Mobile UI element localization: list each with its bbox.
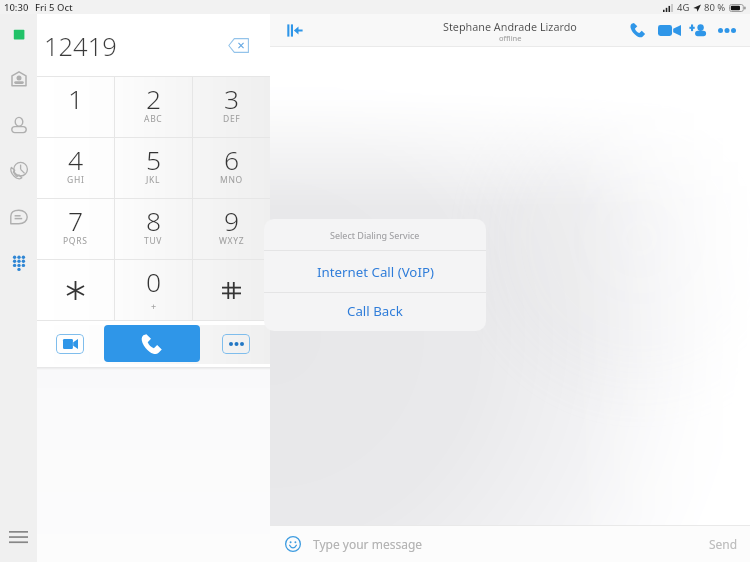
button[interactable]: Voice call — [626, 18, 650, 42]
button[interactable]: 6 — [193, 138, 270, 198]
staticText: 3 — [224, 81, 240, 117]
staticText: 80 % — [704, 1, 726, 14]
button[interactable]: 4 — [37, 138, 114, 198]
button[interactable]: Internet Call (VoIP) — [264, 251, 486, 292]
staticText: Call Back — [347, 302, 403, 320]
staticText: ABC — [144, 113, 163, 125]
staticText: JKL — [146, 174, 161, 186]
button[interactable]: Call Back — [264, 293, 486, 331]
staticText: 9 — [224, 203, 240, 239]
button[interactable]: Emoji — [282, 533, 304, 555]
button[interactable]: 1 — [37, 77, 114, 137]
button[interactable]: Keypad — [5, 248, 33, 276]
button[interactable]: 0 — [115, 260, 192, 320]
button[interactable]: More — [715, 18, 739, 42]
button[interactable]: 7 — [37, 199, 114, 259]
staticText: Internet Call (VoIP) — [317, 263, 434, 281]
button[interactable]: Recent calls — [5, 157, 33, 185]
button[interactable] — [193, 260, 270, 320]
staticText: GHI — [67, 174, 85, 186]
button[interactable]: 5 — [115, 138, 192, 198]
button[interactable]: Video call — [657, 18, 681, 42]
button[interactable]: Profile — [5, 21, 33, 49]
button[interactable]: Call — [104, 325, 200, 362]
staticText: PQRS — [63, 235, 88, 247]
button[interactable]: Contacts — [5, 111, 33, 139]
staticText: TUV — [144, 235, 163, 247]
button[interactable]: Add person — [686, 18, 710, 42]
button[interactable]: Collapse panel — [283, 19, 307, 41]
staticText: DEF — [223, 113, 241, 125]
staticText: 10:30 — [4, 1, 29, 14]
button[interactable] — [37, 260, 114, 320]
staticText: Stephane Andrade Lizardo — [443, 19, 577, 34]
staticText: 12419 — [44, 29, 117, 64]
staticText: Select Dialing Service — [330, 229, 420, 241]
button[interactable]: 2 — [115, 77, 192, 137]
button[interactable]: Send — [705, 536, 742, 552]
button[interactable]: Menu — [5, 526, 32, 548]
button[interactable]: 8 — [115, 199, 192, 259]
staticText: Fri 5 Oct — [35, 1, 73, 14]
button[interactable]: Backspace — [221, 33, 255, 57]
button[interactable]: Video call — [56, 334, 84, 354]
button[interactable]: Contact card — [5, 65, 33, 93]
staticText: 5 — [146, 142, 162, 178]
staticText: offline — [499, 33, 522, 43]
staticText: 6 — [224, 142, 240, 178]
staticText: 8 — [146, 203, 162, 239]
staticText: 2 — [146, 81, 162, 117]
staticText: 0 — [146, 264, 162, 300]
button[interactable]: Type your message — [313, 536, 423, 552]
staticText: 4 — [68, 142, 84, 178]
staticText: + — [151, 300, 157, 312]
button[interactable]: 3 — [193, 77, 270, 137]
staticText: 1 — [68, 81, 84, 117]
staticText: WXYZ — [219, 235, 245, 247]
staticText: 4G — [677, 1, 690, 14]
staticText: 7 — [68, 203, 84, 239]
button[interactable]: More options — [222, 334, 250, 354]
button[interactable]: Messages — [5, 203, 33, 231]
staticText: MNO — [220, 174, 243, 186]
button[interactable]: 9 — [193, 199, 270, 259]
